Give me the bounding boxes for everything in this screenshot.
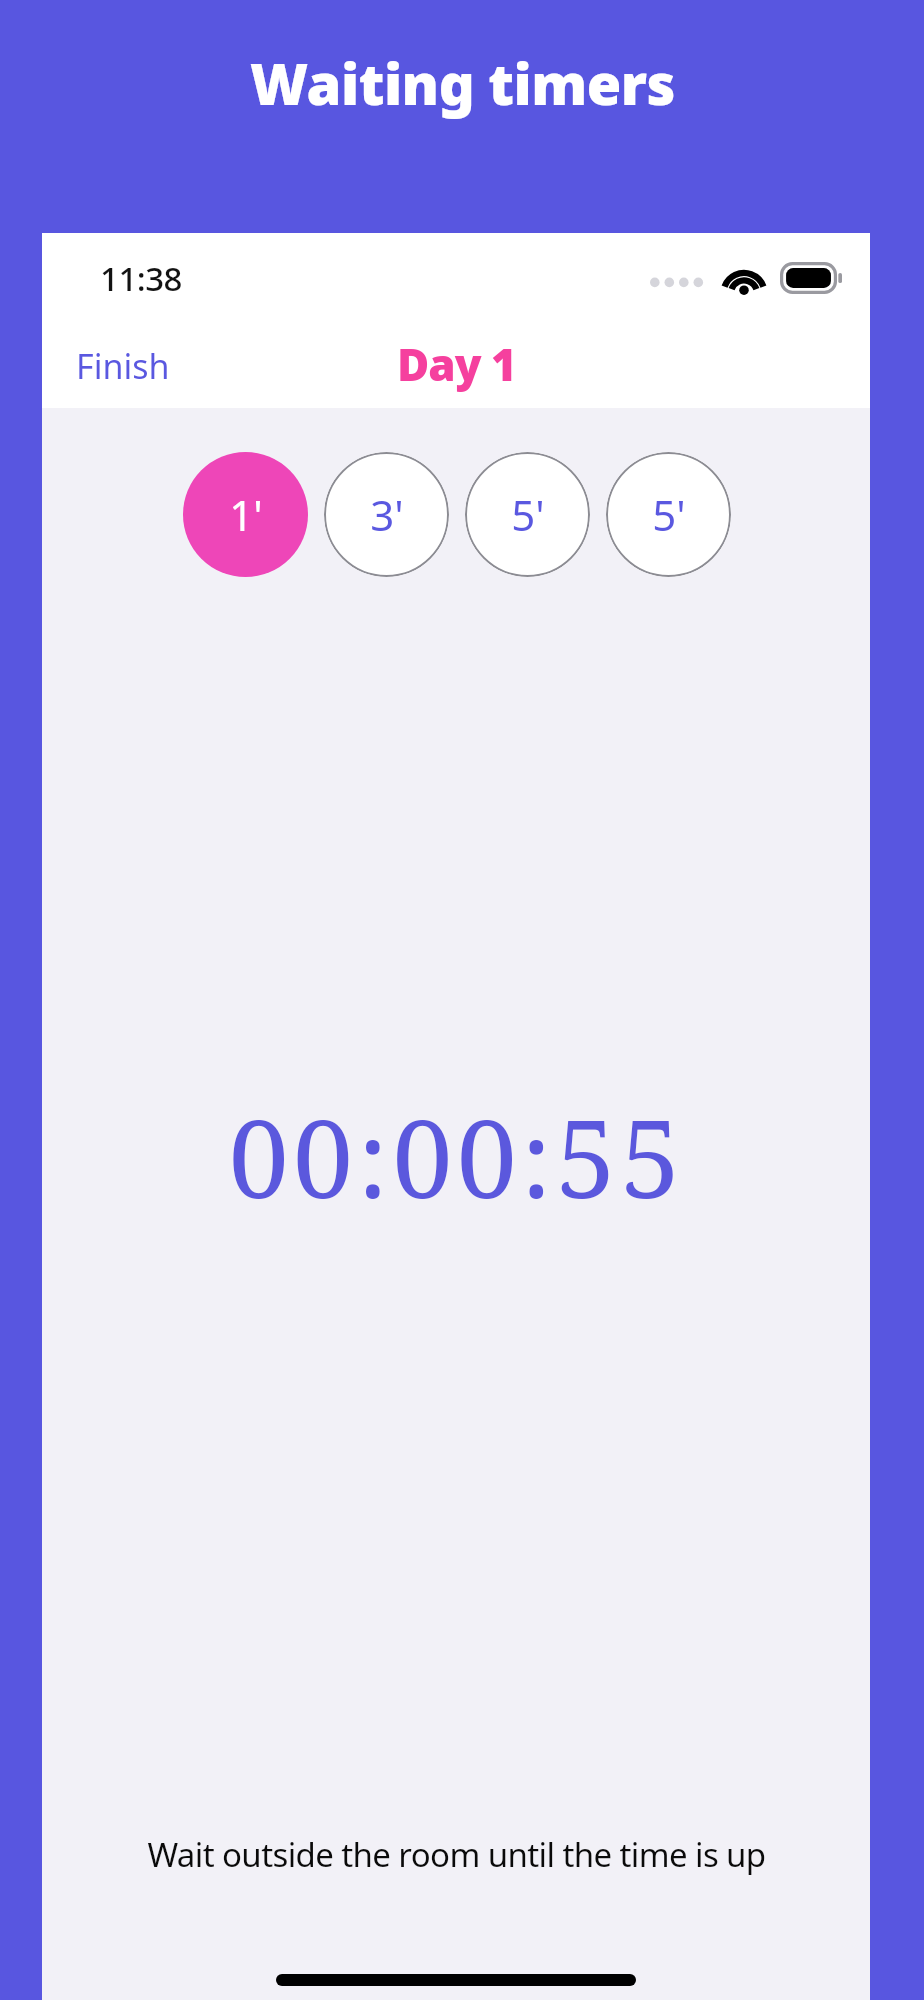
- staticText: 00:00:55: [228, 1083, 685, 1230]
- staticText: 5': [511, 486, 545, 543]
- staticText: 1': [229, 486, 263, 543]
- staticText: Wait outside the room until the time is …: [147, 1832, 766, 1877]
- staticText: 5': [652, 486, 686, 543]
- button[interactable]: 1': [183, 452, 308, 577]
- button[interactable]: 5': [606, 452, 731, 577]
- staticText: Finish: [76, 343, 170, 389]
- button[interactable]: Finish: [42, 335, 190, 397]
- button[interactable]: 5': [465, 452, 590, 577]
- staticText: Day 1: [397, 334, 516, 394]
- button[interactable]: 3': [324, 452, 449, 577]
- staticText: 11:38: [100, 256, 182, 301]
- staticText: Waiting timers: [250, 45, 675, 121]
- staticText: 3': [370, 486, 404, 543]
